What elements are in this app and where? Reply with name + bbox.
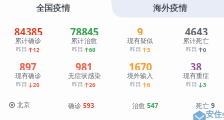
button[interactable]: 死亡 — [196, 101, 215, 110]
staticText: 确诊 — [68, 102, 81, 110]
staticText: 38 — [190, 60, 202, 70]
staticText: 981 — [75, 60, 93, 70]
staticText: 12 — [33, 46, 40, 53]
button[interactable]: 全国疫情 — [0, 0, 106, 17]
staticText: 现有疑似 — [127, 37, 153, 45]
button[interactable]: 9 — [112, 25, 168, 54]
button[interactable]: 海外疫情 — [118, 0, 222, 17]
staticText: 1670 — [129, 60, 152, 70]
staticText: 累计确诊 — [15, 37, 41, 45]
staticText: 无症状感染 — [68, 72, 101, 80]
staticText: 安住会 — [206, 109, 224, 119]
button[interactable]: 897 — [0, 60, 56, 89]
staticText: 累计死亡 — [183, 37, 209, 45]
staticText: 累计治愈 — [71, 37, 97, 45]
staticText: 昨日 — [186, 46, 197, 53]
staticText: 昨日 — [186, 81, 197, 88]
staticText: 9 — [211, 101, 215, 110]
staticText: 0 — [203, 46, 207, 53]
staticText: 死亡 — [196, 102, 209, 110]
staticText: 北京 — [17, 101, 30, 109]
staticText: 60 — [89, 46, 96, 53]
staticText: 昨日 — [72, 46, 83, 53]
staticText: 昨日 — [16, 46, 27, 53]
staticText: 现有确诊 — [15, 72, 41, 80]
staticText: 84385 — [14, 25, 43, 35]
staticText: 26 — [89, 81, 96, 88]
button[interactable]: Location 北京 — [9, 101, 30, 109]
staticText: 昨日 — [130, 81, 141, 88]
staticText: 20 — [33, 81, 40, 88]
button[interactable]: 84385 — [0, 25, 56, 54]
staticText: 6 — [147, 81, 151, 88]
staticText: 593 — [83, 101, 95, 110]
staticText: 3 — [147, 46, 151, 53]
staticText: 547 — [147, 101, 159, 110]
staticText: 全国疫情 — [36, 3, 70, 14]
staticText: 78845 — [70, 25, 99, 35]
staticText: 现有重症 — [183, 72, 209, 80]
staticText: 海外疫情 — [153, 3, 187, 14]
staticText: 897 — [19, 60, 37, 70]
button[interactable]: 4643 — [168, 25, 224, 54]
button[interactable]: 确诊 — [68, 101, 95, 110]
staticText: 昨日 — [130, 46, 141, 53]
staticText: 治愈 — [132, 102, 145, 110]
staticText: 昨日 — [16, 81, 27, 88]
button[interactable]: 78845 — [56, 25, 112, 54]
staticText: 3 — [203, 81, 207, 88]
button[interactable]: 981 — [56, 60, 112, 89]
button[interactable]: 1670 — [112, 60, 168, 89]
staticText: 9 — [137, 25, 143, 35]
staticText: 境外输入 — [127, 72, 153, 80]
staticText: 昨日 — [72, 81, 83, 88]
button[interactable]: 治愈 — [132, 101, 159, 110]
staticText: 4643 — [185, 25, 208, 35]
button[interactable]: 38 — [168, 60, 224, 89]
